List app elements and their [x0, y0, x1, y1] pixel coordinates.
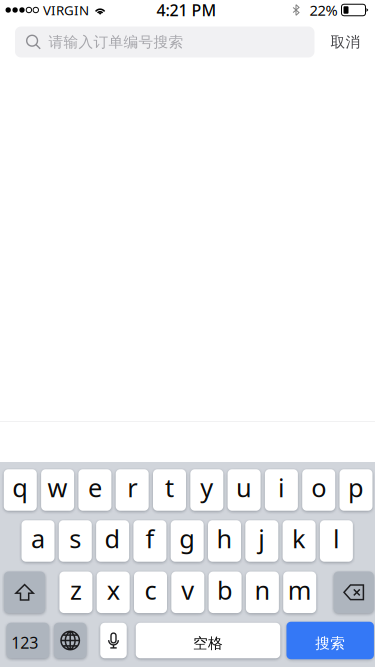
staticText: z [70, 573, 82, 607]
button[interactable]: l [320, 520, 353, 562]
button[interactable]: p [339, 469, 372, 511]
staticText: t [165, 471, 174, 504]
button[interactable]: u [228, 469, 261, 511]
button[interactable]: 空格 [136, 623, 280, 658]
staticText: h [216, 522, 232, 555]
staticText: 搜索 [315, 634, 345, 652]
button[interactable]: h [208, 520, 241, 562]
button[interactable]: v [171, 571, 204, 613]
staticText: 22% [309, 0, 337, 20]
staticText: x [107, 573, 120, 607]
staticText: d [105, 522, 121, 555]
staticText: u [236, 471, 252, 504]
staticText: 取消 [330, 33, 360, 51]
button[interactable]: s [59, 520, 92, 562]
button[interactable]: c [134, 571, 167, 613]
button[interactable]: w [41, 469, 74, 511]
staticText: g [179, 522, 195, 555]
button[interactable]: r [116, 469, 149, 511]
button[interactable]: a [21, 520, 54, 562]
staticText: s [69, 522, 81, 555]
button[interactable]: Delete [334, 571, 374, 613]
staticText: 4:21 PM [156, 0, 216, 21]
button[interactable]: b [209, 571, 242, 613]
staticText: b [217, 573, 233, 607]
staticText: w [48, 471, 68, 504]
staticText: VIRGIN [43, 1, 89, 19]
staticText: v [181, 573, 194, 607]
staticText: 123 [11, 632, 38, 653]
button[interactable]: Dictation [100, 623, 127, 658]
staticText: k [292, 522, 306, 555]
staticText: 请输入订单编号搜索 [48, 33, 183, 51]
button[interactable]: i [265, 469, 298, 511]
staticText: e [88, 471, 102, 504]
button[interactable]: 取消 [330, 26, 360, 57]
staticText: a [31, 522, 45, 555]
button[interactable]: o [302, 469, 335, 511]
button[interactable]: k [283, 520, 316, 562]
staticText: o [311, 471, 326, 504]
button[interactable]: d [96, 520, 129, 562]
button[interactable]: Next keyboard [54, 623, 86, 658]
staticText: m [288, 573, 312, 607]
staticText: i [278, 471, 285, 504]
button[interactable]: j [245, 520, 278, 562]
button[interactable]: g [171, 520, 204, 562]
button[interactable]: t [153, 469, 186, 511]
button[interactable]: 搜索 [286, 622, 374, 659]
button[interactable]: y [190, 469, 223, 511]
staticText: q [12, 471, 28, 504]
staticText: c [144, 573, 156, 607]
button[interactable]: m [283, 571, 316, 613]
staticText: p [348, 471, 364, 504]
button[interactable]: Shift [4, 571, 45, 613]
button[interactable]: e [78, 469, 111, 511]
staticText: l [333, 522, 340, 555]
button[interactable]: n [246, 571, 279, 613]
staticText: 空格 [193, 634, 223, 652]
button[interactable]: z [59, 571, 92, 613]
button[interactable]: 123 [7, 623, 49, 658]
staticText: f [145, 522, 154, 555]
button[interactable]: f [133, 520, 166, 562]
button[interactable]: q [4, 469, 37, 511]
staticText: y [200, 471, 213, 504]
button[interactable]: x [97, 571, 130, 613]
staticText: n [254, 573, 270, 607]
staticText: r [127, 471, 137, 504]
staticText: j [258, 522, 265, 555]
